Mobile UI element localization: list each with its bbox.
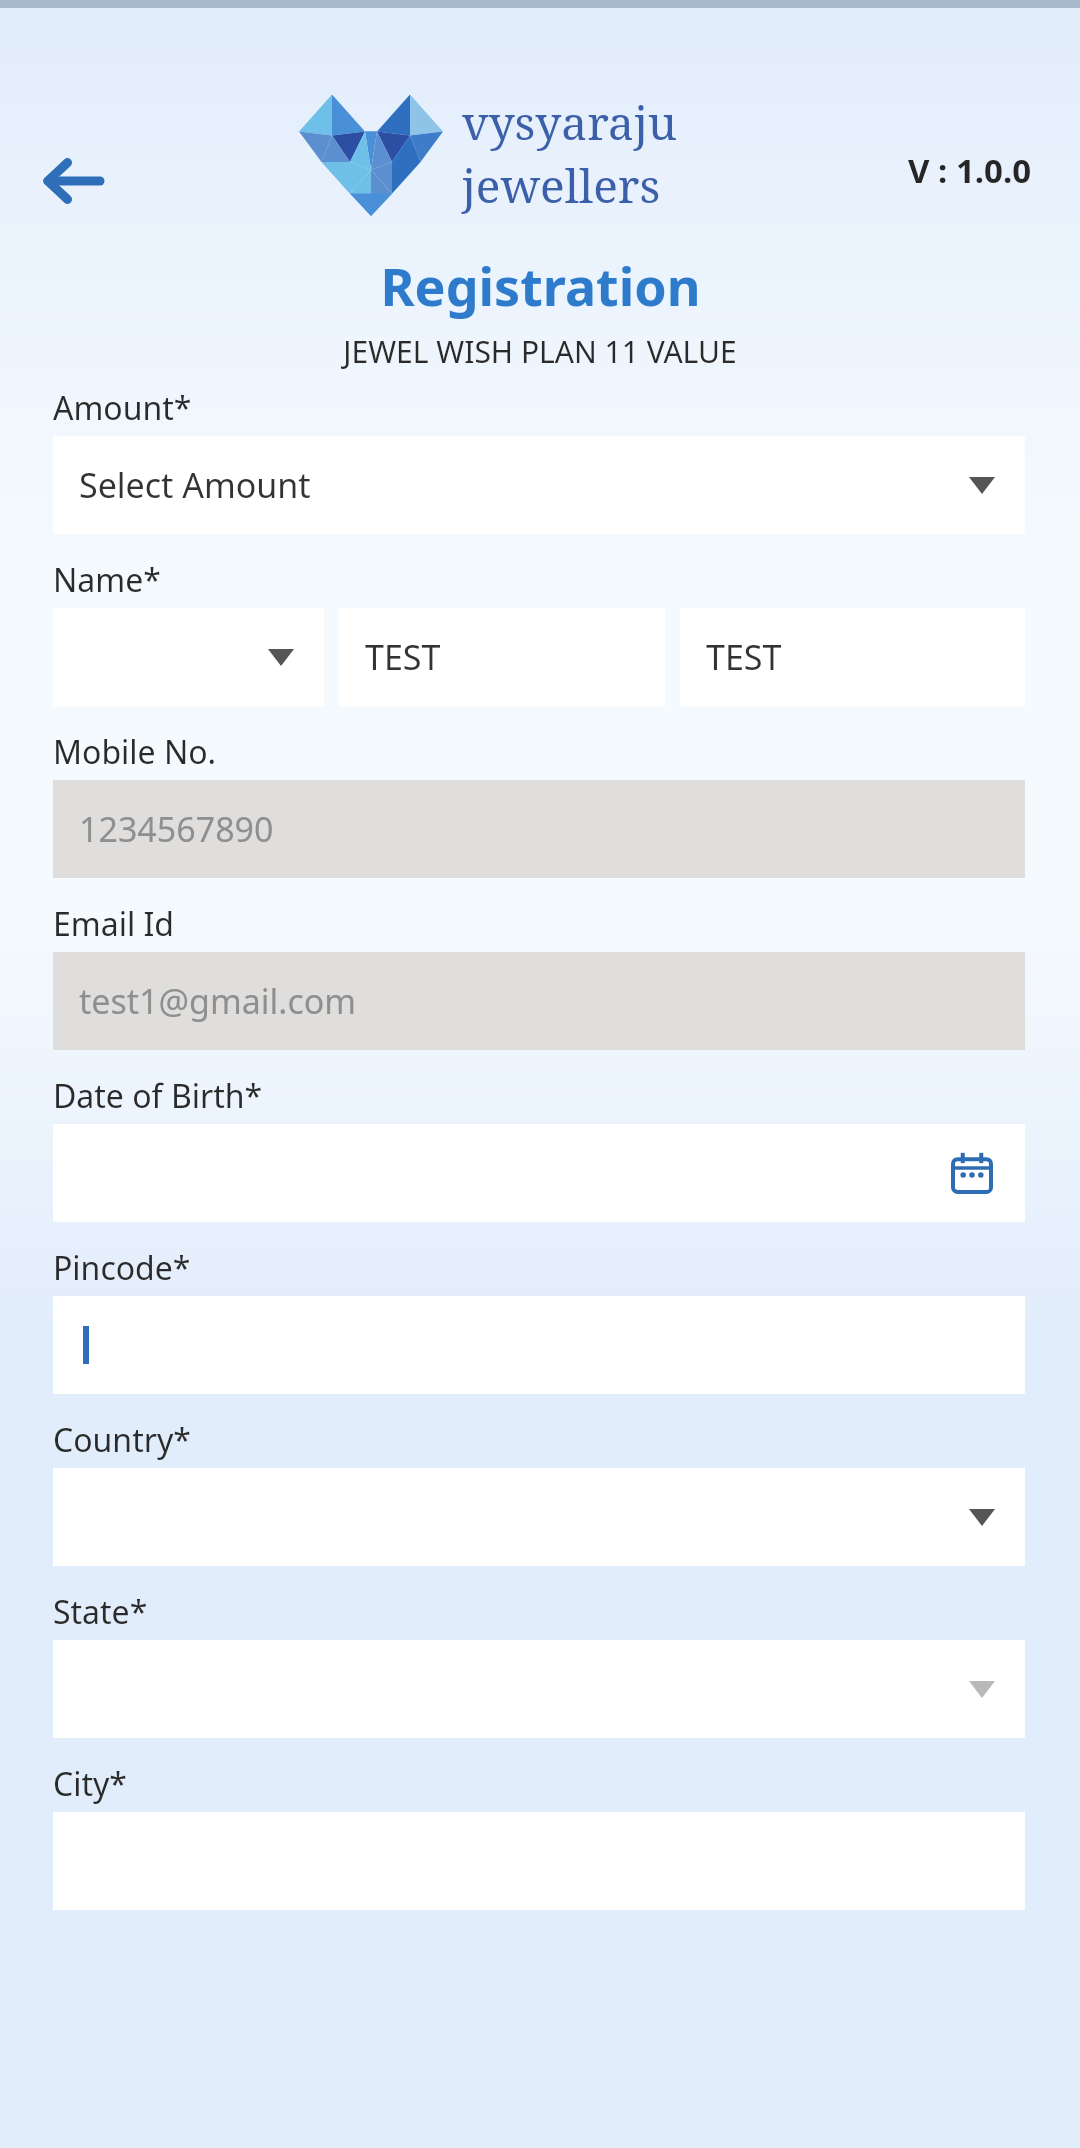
staticText: vysyaraju bbox=[462, 91, 677, 154]
button[interactable]: TEST bbox=[339, 608, 665, 706]
button[interactable]: TEST bbox=[680, 608, 1025, 706]
staticText: V : 1.0.0 bbox=[908, 148, 1032, 193]
staticText: Mobile No. bbox=[53, 730, 217, 774]
staticText: Email Id bbox=[53, 902, 175, 946]
staticText: Registration bbox=[380, 250, 701, 321]
button[interactable]: Select title bbox=[53, 608, 324, 706]
staticText: Pincode* bbox=[53, 1246, 191, 1290]
staticText: Name* bbox=[53, 558, 161, 602]
staticText: State* bbox=[53, 1590, 148, 1634]
button[interactable]: Back bbox=[26, 144, 116, 218]
staticText: TEST bbox=[706, 634, 782, 680]
staticText: 1234567890 bbox=[79, 806, 274, 852]
button[interactable] bbox=[53, 1640, 1025, 1738]
button[interactable]: Select Amount bbox=[53, 436, 1025, 534]
button[interactable] bbox=[53, 1468, 1025, 1566]
button[interactable]: test1@gmail.com bbox=[53, 952, 1025, 1050]
button[interactable] bbox=[53, 1296, 1025, 1394]
staticText: Date of Birth* bbox=[53, 1074, 263, 1118]
staticText: Amount* bbox=[53, 386, 192, 430]
staticText: Select Amount bbox=[79, 462, 311, 508]
button[interactable]: 1234567890 bbox=[53, 780, 1025, 878]
staticText: test1@gmail.com bbox=[79, 978, 357, 1024]
staticText: Country* bbox=[53, 1418, 191, 1462]
staticText: JEWEL WISH PLAN 11 VALUE bbox=[343, 331, 737, 372]
button[interactable]: Pick date bbox=[53, 1124, 1025, 1222]
staticText: jewellers bbox=[462, 154, 661, 217]
staticText: City* bbox=[53, 1762, 127, 1806]
staticText: TEST bbox=[365, 634, 441, 680]
button[interactable]: Pick date bbox=[945, 1146, 999, 1200]
